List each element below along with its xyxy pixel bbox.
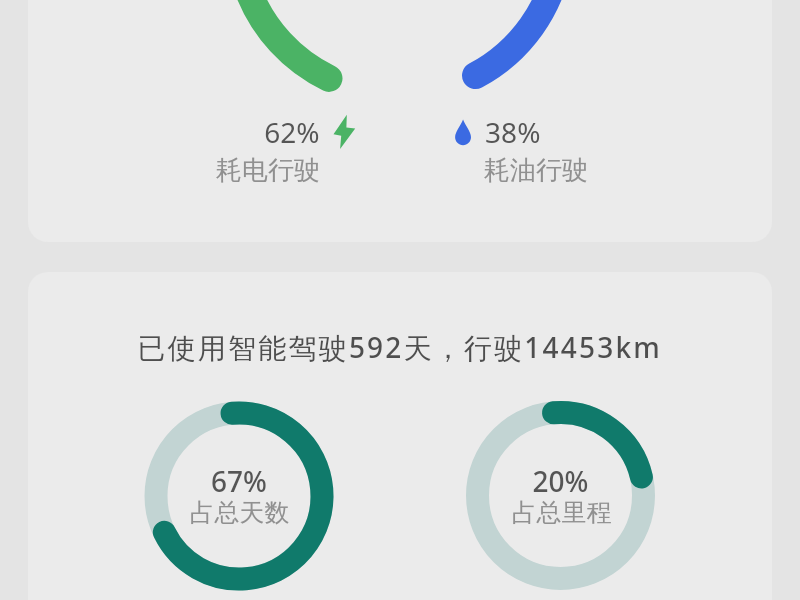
button[interactable] bbox=[28, 272, 772, 600]
button[interactable]: 占总里程 20% bbox=[466, 401, 654, 589]
button[interactable] bbox=[28, 0, 772, 242]
button[interactable]: 占总天数 67% bbox=[145, 401, 333, 589]
